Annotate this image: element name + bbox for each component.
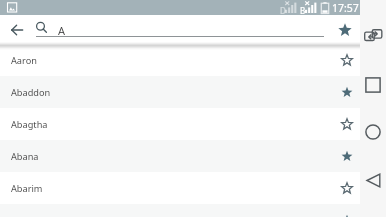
button[interactable]: Abarim <box>0 172 360 204</box>
staticText: Aaron <box>11 54 37 67</box>
button[interactable]: Unfavorite <box>338 147 356 165</box>
button[interactable]: Aaron <box>0 44 360 76</box>
staticText: A <box>58 23 66 38</box>
staticText: 17:57 <box>332 1 359 15</box>
other: Search <box>36 22 47 33</box>
button[interactable]: Favorite <box>338 115 356 133</box>
staticText: B <box>300 5 306 16</box>
button[interactable]: Favorite <box>338 179 356 197</box>
button[interactable]: Rotate screen <box>360 22 386 48</box>
button[interactable]: Abagtha <box>0 108 360 140</box>
button[interactable]: Unfavorite <box>338 211 356 217</box>
button[interactable]: Favorite <box>338 51 356 69</box>
button[interactable]: Favorite <box>336 21 354 39</box>
staticText: D <box>280 5 286 16</box>
staticText: Abana <box>11 150 39 163</box>
button[interactable]: Unfavorite <box>338 83 356 101</box>
button[interactable]: Recent apps <box>360 72 386 98</box>
button[interactable]: Abana <box>0 140 360 172</box>
button[interactable]: Home <box>360 119 386 145</box>
staticText: Abaddon <box>11 86 51 99</box>
staticText: Abarim <box>11 182 43 195</box>
staticText: Abagtha <box>11 118 48 131</box>
button[interactable]: Back <box>360 167 386 193</box>
button[interactable]: Abaddon <box>0 76 360 108</box>
button[interactable]: Back <box>5 18 29 42</box>
